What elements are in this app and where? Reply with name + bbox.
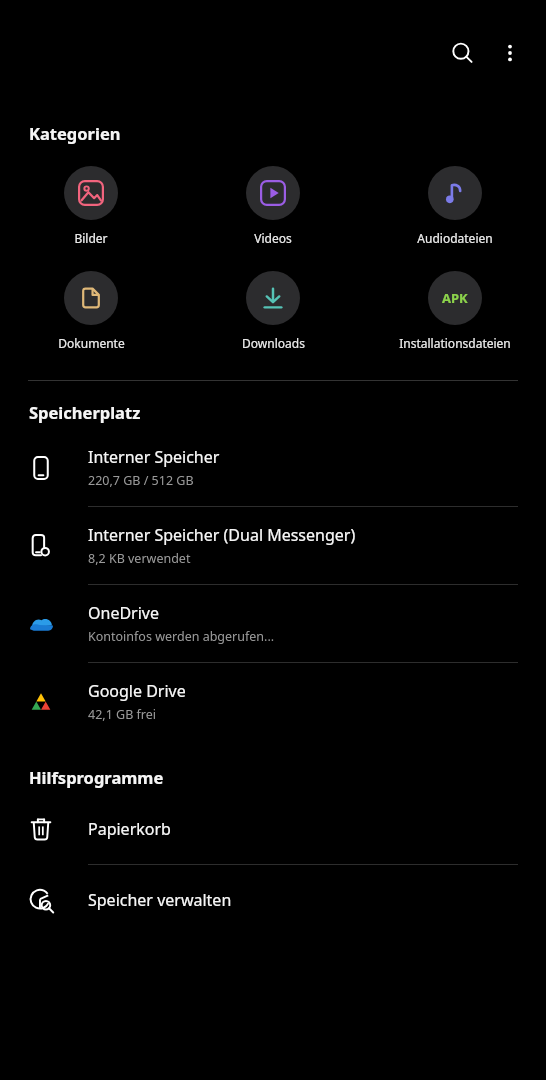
- button[interactable]: Papierkorb: [0, 794, 546, 864]
- button[interactable]: Dokumente: [0, 269, 182, 353]
- staticText: Kontoinfos werden abgerufen...: [88, 628, 275, 645]
- staticText: Installationsdateien: [399, 335, 511, 351]
- staticText: Kategorien: [29, 122, 121, 144]
- button[interactable]: Speicher verwalten: [0, 865, 546, 935]
- staticText: 8,2 KB verwendet: [88, 550, 191, 567]
- button[interactable]: Videos: [182, 164, 364, 248]
- staticText: Google Drive: [88, 680, 186, 702]
- button[interactable]: Weitere Optionen: [486, 29, 534, 77]
- button[interactable]: Downloads: [182, 269, 364, 353]
- staticText: Bilder: [74, 230, 108, 246]
- button[interactable]: Bilder: [0, 164, 182, 248]
- staticText: APK: [442, 289, 468, 307]
- staticText: Hilfsprogramme: [29, 766, 164, 788]
- button[interactable]: Interner Speicher: [0, 429, 546, 506]
- staticText: 220,7 GB / 512 GB: [88, 472, 194, 489]
- button[interactable]: APK: [364, 269, 546, 353]
- button[interactable]: Audiodateien: [364, 164, 546, 248]
- button[interactable]: Interner Speicher (Dual Messenger): [0, 507, 546, 584]
- button[interactable]: Google Drive: [0, 663, 546, 740]
- staticText: 42,1 GB frei: [88, 706, 157, 723]
- button[interactable]: OneDrive: [0, 585, 546, 662]
- staticText: Papierkorb: [88, 818, 171, 840]
- staticText: Videos: [254, 230, 292, 246]
- staticText: OneDrive: [88, 602, 159, 624]
- staticText: Dokumente: [58, 335, 125, 351]
- button[interactable]: Suchen: [438, 29, 486, 77]
- staticText: Speicherplatz: [29, 401, 141, 423]
- staticText: Speicher verwalten: [88, 889, 232, 911]
- staticText: Downloads: [242, 335, 305, 351]
- staticText: Interner Speicher (Dual Messenger): [88, 524, 356, 546]
- staticText: Audiodateien: [417, 230, 493, 246]
- staticText: Interner Speicher: [88, 446, 220, 468]
